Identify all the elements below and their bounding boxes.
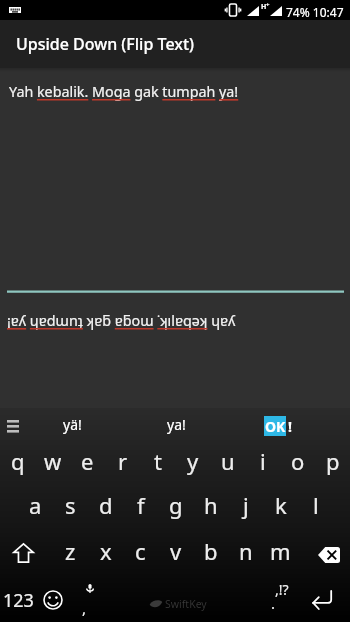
staticText: u (221, 446, 235, 476)
staticText: 74% 10:47 (286, 4, 344, 20)
staticText: m (270, 536, 291, 566)
button[interactable]: w (35, 439, 70, 483)
staticText: d (99, 490, 113, 520)
button[interactable]: n (228, 529, 263, 573)
button[interactable]: q (0, 439, 35, 483)
button[interactable]: ya! (133, 408, 219, 440)
button[interactable]: l (298, 483, 333, 527)
button[interactable]: r (105, 439, 140, 483)
staticText: g (169, 490, 183, 520)
staticText: c (135, 536, 146, 566)
staticText: z (65, 536, 76, 566)
staticText: l (313, 490, 319, 520)
staticText: + (266, 1, 270, 9)
button[interactable]: f (123, 483, 158, 527)
staticText: Upside Down (Flip Text) (16, 33, 195, 55)
button[interactable]: k (263, 483, 298, 527)
button[interactable]: c (123, 529, 158, 573)
staticText: x (100, 536, 112, 566)
button[interactable]: h (193, 483, 228, 527)
staticText: SwiftKey (165, 597, 207, 611)
button[interactable]: p (315, 439, 350, 483)
button[interactable]: j (228, 483, 263, 527)
staticText: yä! (63, 415, 82, 434)
button[interactable]: d (88, 483, 123, 527)
button[interactable]: i (245, 439, 280, 483)
button[interactable]: y (175, 439, 210, 483)
staticText: q (11, 446, 25, 476)
staticText: j (243, 490, 249, 520)
staticText: i (260, 446, 266, 476)
staticText: , (82, 598, 87, 618)
staticText: w (44, 446, 62, 476)
button[interactable]: e (70, 439, 105, 483)
staticText: o (291, 446, 305, 476)
button[interactable]: Emoji (36, 583, 69, 617)
staticText: ,!? (275, 580, 289, 599)
button[interactable]: OK (232, 408, 318, 440)
button[interactable]: u (210, 439, 245, 483)
staticText: a (29, 490, 42, 520)
staticText: H (261, 2, 267, 12)
staticText: f (137, 490, 145, 520)
button[interactable]: 123 (0, 583, 36, 617)
staticText: p (326, 446, 340, 476)
staticText: 123 (3, 588, 34, 613)
staticText: ! (288, 417, 292, 436)
button[interactable]: Enter (299, 583, 345, 617)
staticText: t (154, 446, 162, 476)
button[interactable]: Backspace (306, 533, 350, 577)
button[interactable]: b (193, 529, 228, 573)
button[interactable]: yä! (29, 408, 115, 440)
button[interactable]: x (88, 529, 123, 573)
button[interactable]: Keyboard menu (0, 408, 34, 440)
staticText: e (81, 446, 94, 476)
staticText: s (65, 490, 76, 520)
button[interactable]: g (158, 483, 193, 527)
button[interactable]: v (158, 529, 193, 573)
staticText: r (118, 446, 128, 476)
button[interactable]: Shift (0, 531, 46, 575)
button[interactable]: m (263, 529, 298, 573)
staticText: OK (265, 417, 286, 436)
staticText: h (204, 490, 218, 520)
staticText: v (170, 536, 182, 566)
staticText: . (271, 593, 276, 613)
staticText: y (187, 446, 199, 476)
button[interactable]: ,!? (255, 583, 304, 617)
button[interactable]: z (53, 529, 88, 573)
staticText: b (204, 536, 218, 566)
staticText: n (239, 536, 253, 566)
button[interactable]: s (53, 483, 88, 527)
button[interactable]: t (140, 439, 175, 483)
button[interactable]: Space (69, 583, 255, 617)
staticText: ya! (167, 415, 186, 434)
button[interactable]: o (280, 439, 315, 483)
staticText: k (275, 490, 287, 520)
button[interactable]: a (18, 483, 53, 527)
